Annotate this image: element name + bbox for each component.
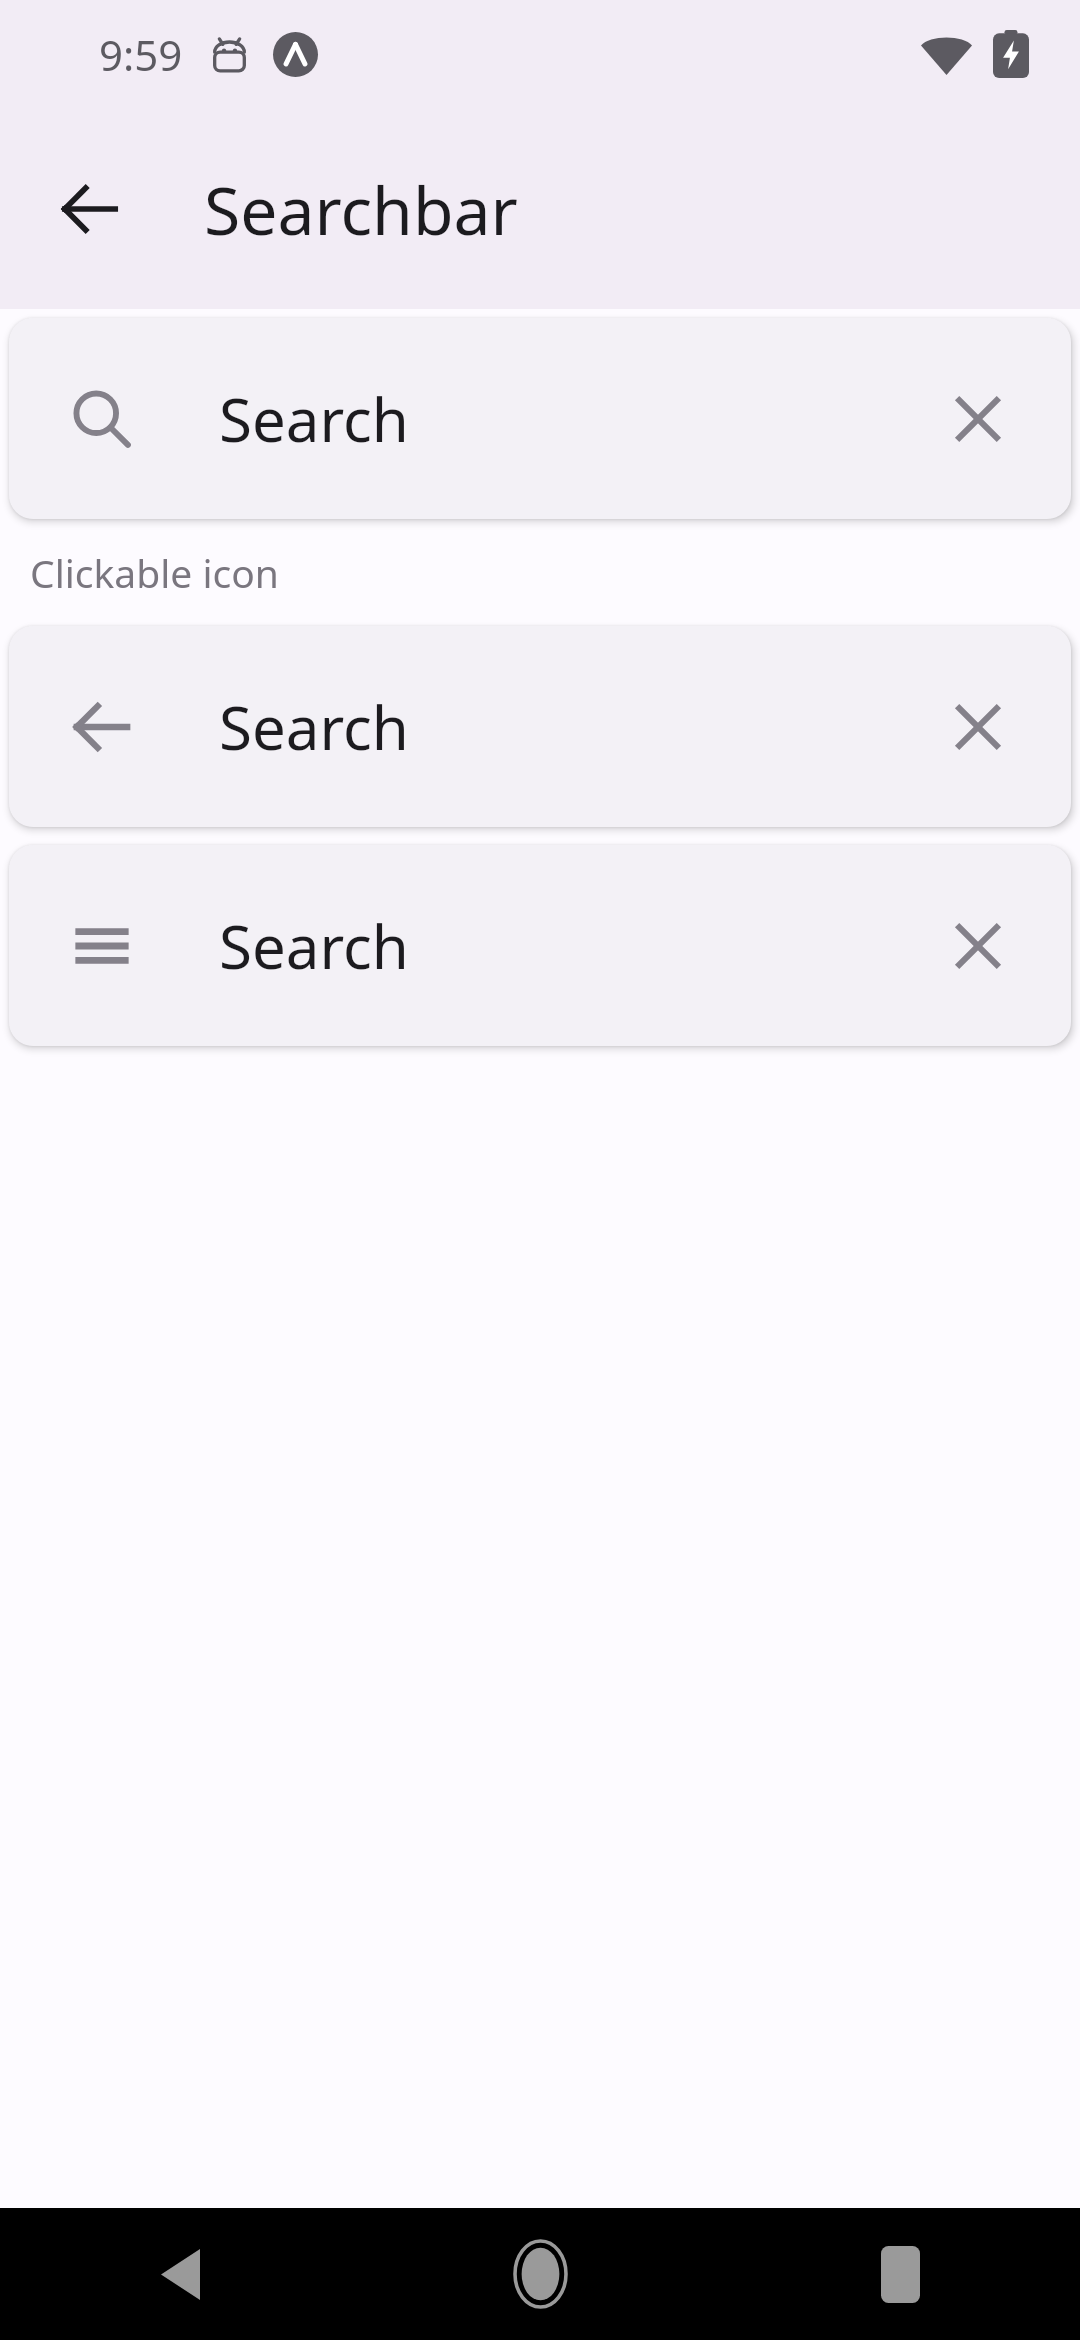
button[interactable]: Back — [30, 655, 174, 799]
staticText: Searchbar — [204, 164, 518, 254]
button[interactable]: Back — [0, 2208, 360, 2340]
button[interactable]: Recents — [720, 2208, 1080, 2340]
staticText: 9:59 — [99, 26, 183, 83]
button[interactable]: Clear search — [906, 347, 1050, 491]
button[interactable]: Home — [360, 2208, 720, 2340]
button[interactable]: Navigate up — [18, 137, 162, 281]
staticText: Search — [219, 378, 409, 460]
button[interactable]: Search — [30, 347, 174, 491]
staticText: Search — [219, 686, 409, 768]
button[interactable]: Search — [9, 318, 1071, 519]
button[interactable]: Menu — [9, 845, 1071, 1046]
button[interactable]: Clear search — [906, 874, 1050, 1018]
staticText: Clickable icon — [30, 546, 279, 599]
staticText: Search — [219, 905, 409, 987]
button[interactable]: Clear search — [906, 655, 1050, 799]
button[interactable]: Back — [9, 626, 1071, 827]
button[interactable]: Menu — [30, 874, 174, 1018]
